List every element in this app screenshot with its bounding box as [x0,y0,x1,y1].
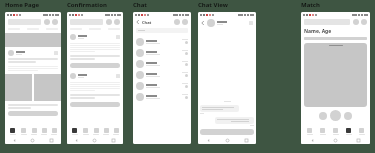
button[interactable]: Tab 5 [111,126,121,137]
staticText: Chat [142,20,152,25]
button[interactable]: Back [198,137,218,144]
button[interactable]: Tab 3 [91,126,101,137]
button[interactable]: Home [324,137,347,144]
button[interactable]: Recents [42,137,61,144]
button[interactable]: Recents [347,137,370,144]
button[interactable]: Search [174,19,180,25]
button[interactable] [133,58,191,69]
button[interactable]: Tab 1 [7,126,18,137]
button[interactable]: Back [67,137,85,144]
staticText: Confirmation [67,1,107,9]
button[interactable]: Notifications [106,19,112,25]
button[interactable]: Back [5,137,23,144]
staticText: Chat [133,1,147,9]
staticText: Chat View [198,1,228,9]
staticText: Name, Age [304,28,332,35]
button[interactable]: Back [201,21,205,25]
staticText: Home Page [5,1,40,9]
button[interactable]: Tab 5 [49,126,59,137]
button[interactable]: Back [301,137,324,144]
button[interactable]: Tab 3 [29,126,39,137]
button[interactable] [70,102,120,107]
button[interactable]: Super like [344,112,352,120]
button[interactable]: Home [85,137,104,144]
button[interactable]: Profile [114,19,120,25]
button[interactable]: New chat [182,19,188,25]
button[interactable] [70,63,120,68]
button[interactable] [133,47,191,58]
button[interactable] [133,36,191,47]
button[interactable]: Profile [52,19,58,25]
button[interactable]: Home [218,137,237,144]
button[interactable]: Recents [104,137,123,144]
button[interactable]: Tab 4 [342,126,355,137]
button[interactable] [133,91,191,102]
button[interactable]: Dislike [319,112,327,120]
button[interactable]: Tab 2 [316,126,329,137]
button[interactable]: Profile [361,19,367,25]
button[interactable] [200,129,254,135]
button[interactable]: Tab 5 [355,126,368,137]
button[interactable]: Home [23,137,42,144]
button[interactable]: Tab 3 [329,126,342,137]
button[interactable]: Tab 2 [18,126,29,137]
button[interactable] [133,80,191,91]
button[interactable]: Tab 4 [101,126,111,137]
button[interactable] [136,28,188,33]
staticText: Match [301,1,320,9]
button[interactable]: Tab 4 [39,126,49,137]
button[interactable]: Profile photo [304,43,367,107]
button[interactable]: Tab 1 [303,126,316,137]
button[interactable] [8,111,58,116]
button[interactable]: Back [136,20,140,24]
button[interactable] [133,69,191,80]
button[interactable]: Notifications [44,19,50,25]
button[interactable]: Tab 2 [80,126,91,137]
button[interactable]: Tab 1 [69,126,80,137]
button[interactable]: Recents [237,137,256,144]
button[interactable]: Filter [353,19,359,25]
button[interactable]: Like [330,110,341,121]
